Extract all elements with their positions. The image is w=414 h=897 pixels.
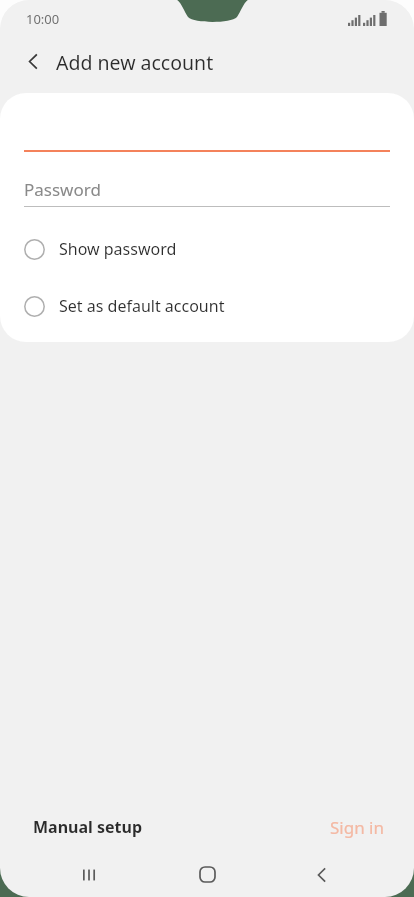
staticText: Set as default account xyxy=(59,295,225,317)
button[interactable]: Back xyxy=(298,852,346,897)
button[interactable]: Recent apps xyxy=(66,852,114,897)
button[interactable]: Sign in xyxy=(318,812,414,843)
button[interactable]: Set as default account xyxy=(18,288,241,324)
staticText: Show password xyxy=(59,238,177,260)
button[interactable]: Password xyxy=(24,175,390,207)
staticText: Add new account xyxy=(56,49,214,76)
button[interactable]: Show password xyxy=(18,231,193,267)
button[interactable]: Back xyxy=(15,43,51,79)
staticText: Manual setup xyxy=(33,816,143,838)
button[interactable]: Email address xyxy=(24,111,390,153)
button[interactable]: Manual setup xyxy=(0,812,155,842)
staticText: Password xyxy=(24,178,101,201)
button[interactable]: Home xyxy=(183,852,231,897)
staticText: 10:00 xyxy=(26,10,60,28)
staticText: Sign in xyxy=(330,816,384,839)
